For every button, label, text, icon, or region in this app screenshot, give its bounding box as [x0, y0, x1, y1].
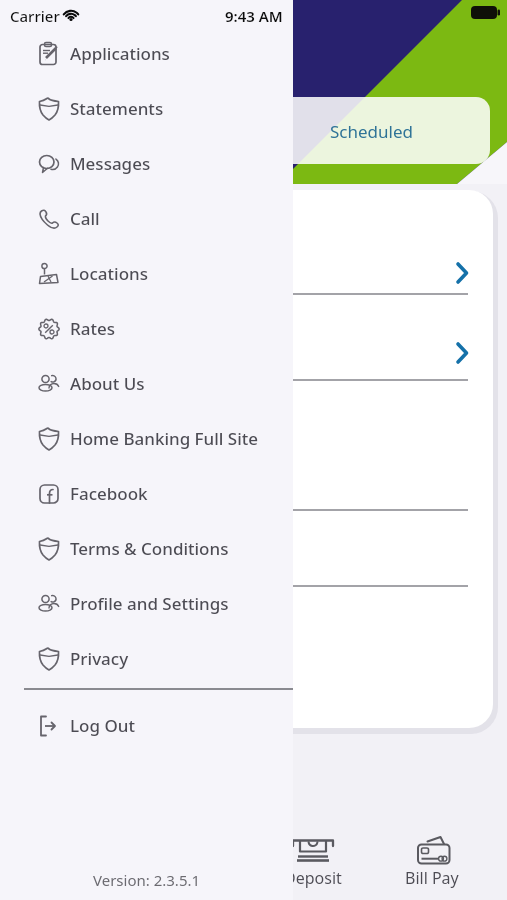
staticText: Applications [70, 42, 170, 65]
button[interactable]: Privacy [0, 631, 293, 686]
button[interactable]: Profile and Settings [0, 576, 293, 631]
button[interactable] [380, 830, 484, 894]
button[interactable]: Applications [0, 26, 293, 81]
button[interactable]: Call [0, 191, 293, 246]
staticText: Deposit [284, 867, 342, 889]
button[interactable]: Home Banking Full Site [0, 411, 293, 466]
staticText: Call [70, 207, 100, 230]
staticText: Locations [70, 262, 148, 285]
staticText: About Us [70, 372, 145, 395]
staticText: Bill Pay [405, 867, 459, 889]
button[interactable]: Log Out [0, 698, 293, 753]
staticText: Terms & Conditions [70, 537, 229, 560]
staticText: Carrier [10, 6, 60, 26]
button[interactable]: Rates [0, 301, 293, 356]
button[interactable]: Locations [0, 246, 293, 301]
staticText: Statements [70, 97, 164, 120]
button[interactable]: Facebook [0, 466, 293, 521]
button[interactable]: Statements [0, 81, 293, 136]
button[interactable]: Terms & Conditions [0, 521, 293, 576]
staticText: Facebook [70, 482, 148, 505]
staticText: 9:43 AM [225, 6, 283, 26]
staticText: Version: 2.3.5.1 [93, 870, 201, 890]
staticText: Profile and Settings [70, 592, 229, 615]
button[interactable] [261, 830, 365, 894]
staticText: Messages [70, 152, 151, 175]
staticText: Scheduled [330, 120, 413, 143]
button[interactable]: Messages [0, 136, 293, 191]
staticText: Home Banking Full Site [70, 427, 259, 450]
staticText: Log Out [70, 714, 135, 737]
button[interactable]: Scheduled [252, 103, 490, 159]
staticText: Privacy [70, 647, 129, 670]
staticText: Rates [70, 317, 115, 340]
button[interactable]: About Us [0, 356, 293, 411]
